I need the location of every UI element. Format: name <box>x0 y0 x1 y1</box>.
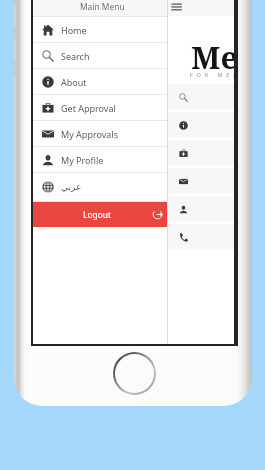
button[interactable]: My Approvals <box>33 121 167 146</box>
staticText: Main Menu <box>80 1 125 12</box>
staticText: Logout <box>83 209 111 220</box>
staticText: F O R M E D I C A L <box>190 71 234 78</box>
staticText: My Profile <box>61 154 104 166</box>
staticText: Get Approval <box>61 102 116 114</box>
staticText: Home <box>61 24 87 36</box>
staticText: My Approvals <box>61 128 118 140</box>
button[interactable]: Home <box>33 17 167 42</box>
button[interactable]: My Profile <box>33 147 167 172</box>
button[interactable]: Search <box>168 84 234 110</box>
button[interactable]: Search <box>33 43 167 68</box>
button[interactable]: Profile <box>168 196 234 222</box>
staticText: عربي <box>61 182 82 192</box>
staticText: MedTrack <box>191 36 234 67</box>
staticText: About <box>61 76 87 88</box>
button[interactable]: About <box>33 69 167 94</box>
button[interactable]: Get approval <box>168 140 234 166</box>
button[interactable]: Call <box>168 224 234 250</box>
button[interactable]: Approvals <box>168 168 234 194</box>
button[interactable]: Open menu <box>171 1 182 13</box>
button[interactable]: About <box>168 112 234 138</box>
button[interactable]: Logout <box>33 202 167 227</box>
button[interactable]: عربي <box>33 173 167 201</box>
button[interactable]: Get Approval <box>33 95 167 120</box>
staticText: Search <box>61 50 90 62</box>
